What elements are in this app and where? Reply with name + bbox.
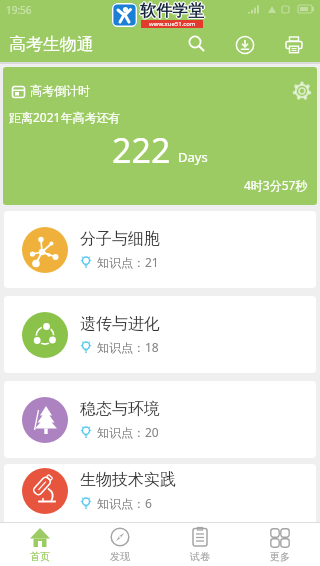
staticText: 遗传与进化	[80, 314, 160, 334]
button[interactable]: 更多	[240, 522, 320, 566]
staticText: 软件学堂	[140, 2, 204, 22]
button[interactable]: 试卷	[160, 522, 240, 566]
staticText: 知识点：20	[97, 424, 159, 440]
button[interactable]: 首页	[0, 522, 80, 566]
staticText: 软件学堂	[141, 1, 205, 21]
button[interactable]	[225, 27, 265, 62]
staticText: 高考倒计时	[30, 83, 90, 98]
staticText: Days	[178, 148, 208, 166]
staticText: 试卷	[190, 550, 210, 563]
button[interactable]	[274, 27, 314, 62]
staticText: 发现	[110, 550, 130, 563]
staticText: 软件学堂	[139, 1, 203, 21]
button[interactable]	[177, 27, 217, 62]
staticText: 知识点：21	[97, 254, 159, 270]
button[interactable]: 分子与细胞	[4, 211, 316, 288]
staticText: 19:56	[6, 3, 32, 17]
button[interactable]	[285, 77, 315, 105]
button[interactable]: 发现	[80, 522, 160, 566]
staticText: 高考生物通	[9, 34, 94, 55]
staticText: 知识点：18	[97, 339, 159, 355]
staticText: 稳态与环境	[80, 399, 160, 419]
button[interactable]: 生物技术实践	[4, 464, 316, 541]
staticText: 4时3分57秒	[244, 177, 308, 193]
staticText: 生物技术实践	[80, 470, 176, 490]
staticText: 软件学堂	[140, 0, 204, 20]
button[interactable]: 遗传与进化	[4, 296, 316, 373]
staticText: 更多	[270, 550, 290, 563]
staticText: 知识点：6	[97, 495, 152, 511]
staticText: 分子与细胞	[80, 229, 160, 249]
staticText: 首页	[30, 550, 50, 563]
button[interactable]: 稳态与环境	[4, 381, 316, 458]
staticText: 软件学堂	[140, 1, 204, 21]
staticText: www.xue51.com	[149, 20, 196, 28]
staticText: 222	[112, 127, 171, 173]
staticText: 距离2021年高考还有	[9, 109, 121, 125]
